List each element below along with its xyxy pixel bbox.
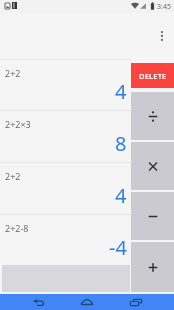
button[interactable]: × [131,142,174,190]
staticText: 2+2 [5,170,21,182]
staticText: 2+2×3 [5,118,31,130]
button[interactable]: Recents [125,294,147,310]
staticText: 4 [115,78,127,105]
button[interactable]: 2+2 [0,59,131,110]
button[interactable]: Back [27,294,49,310]
staticText: 3:45 [157,2,171,12]
staticText: 4 [115,182,127,209]
staticText: DELETE [139,71,167,81]
button[interactable]: + [131,242,174,292]
staticText: 2+2-8 [5,222,29,234]
staticText: 2+2 [5,67,21,79]
button[interactable]: DELETE [131,63,174,88]
button[interactable]: More options [151,25,173,47]
button[interactable]: 2+2×3 [0,110,131,162]
staticText: 8 [115,130,127,157]
button[interactable]: Home [76,294,98,310]
button[interactable]: − [131,192,174,240]
button[interactable]: 2+2-8 [0,214,131,266]
staticText: -4 [109,234,127,261]
button[interactable]: ÷ [131,92,174,140]
button[interactable]: 2+2 [0,162,131,214]
